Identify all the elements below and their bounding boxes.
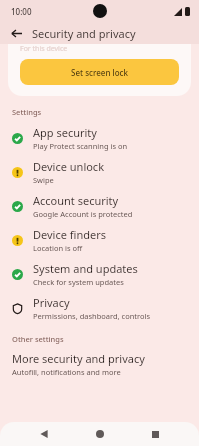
- staticText: Privacy: [33, 295, 70, 310]
- staticText: Account security: [33, 193, 119, 208]
- button[interactable]: More security and privacy: [0, 348, 199, 381]
- button[interactable]: Account security: [0, 189, 199, 223]
- staticText: App security: [33, 125, 97, 140]
- staticText: Check for system updates: [33, 277, 124, 287]
- button[interactable]: Privacy: [0, 291, 199, 325]
- button[interactable]: System and updates: [0, 257, 199, 291]
- staticText: More security and privacy: [12, 351, 145, 366]
- button[interactable]: Device finders: [0, 223, 199, 257]
- staticText: Other settings: [12, 334, 64, 344]
- staticText: Settings: [12, 107, 42, 117]
- staticText: Swipe: [33, 175, 54, 185]
- staticText: Permissions, dashboard, controls: [33, 311, 151, 321]
- staticText: Set screen lock: [71, 67, 128, 78]
- staticText: Location is off: [33, 243, 83, 253]
- staticText: Device unlock: [33, 159, 105, 174]
- button[interactable]: Back: [32, 422, 56, 446]
- button[interactable]: Recent apps: [143, 422, 167, 446]
- staticText: Play Protect scanning is on: [33, 141, 128, 151]
- button[interactable]: Device unlock: [0, 155, 199, 189]
- staticText: 10:00: [11, 6, 32, 17]
- staticText: Device finders: [33, 227, 106, 242]
- button[interactable]: App security: [0, 121, 199, 155]
- button[interactable]: Set screen lock: [20, 59, 179, 85]
- staticText: System and updates: [33, 261, 138, 276]
- staticText: For this device: [20, 44, 68, 54]
- staticText: Autofill, notifications and more: [12, 367, 121, 377]
- button[interactable]: Home: [88, 422, 112, 446]
- staticText: Security and privacy: [32, 26, 136, 41]
- staticText: Google Account is protected: [33, 209, 133, 219]
- button[interactable]: Back: [6, 23, 26, 43]
